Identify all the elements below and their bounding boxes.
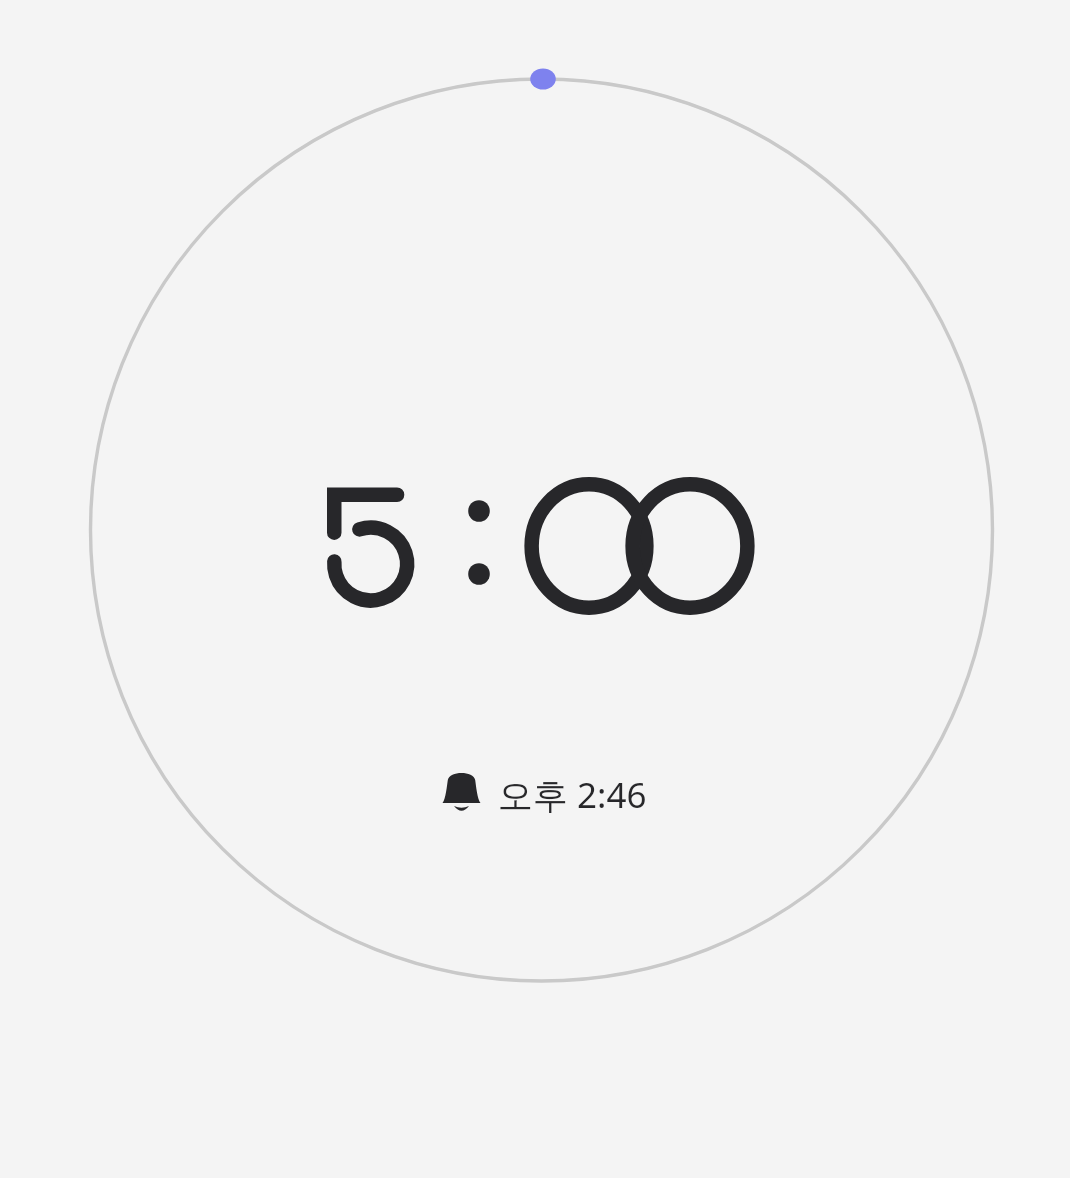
button[interactable]: Timer 5 minutes 0 seconds, alarm 오후 2:46 — [0, 0, 1070, 1178]
staticText: 오후 2:46 — [498, 771, 647, 819]
